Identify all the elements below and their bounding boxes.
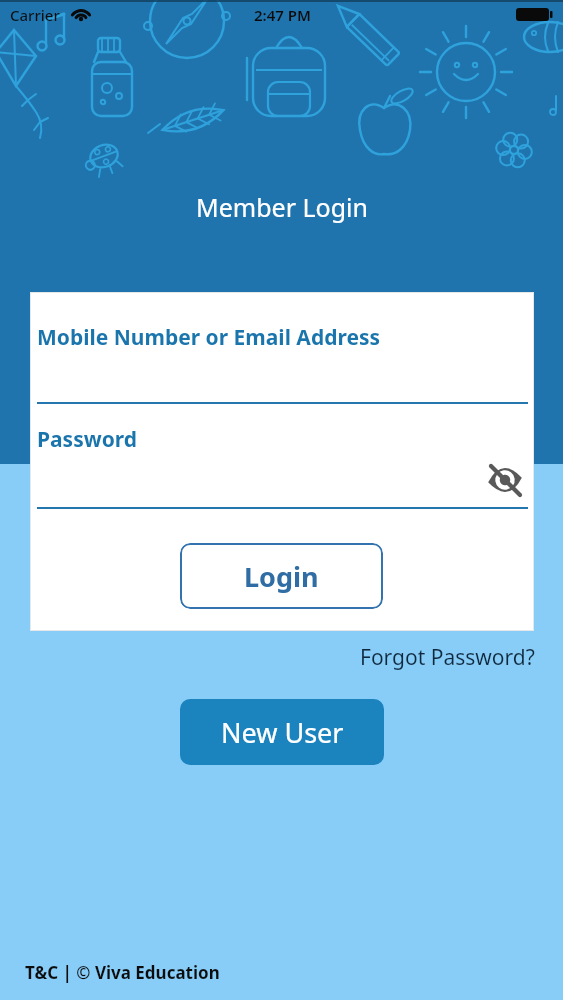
staticText: Password (37, 425, 138, 454)
staticText: Carrier (10, 5, 60, 25)
button[interactable]: Forgot Password? (300, 642, 535, 672)
button[interactable] (485, 460, 525, 500)
button[interactable]: New User (180, 699, 384, 765)
button[interactable]: Login (180, 543, 383, 609)
staticText: Login (244, 558, 319, 595)
staticText: Mobile Number or Email Address (37, 323, 381, 352)
staticText: Member Login (196, 190, 368, 224)
staticText: Forgot Password? (360, 643, 535, 672)
staticText: 2:47 PM (254, 5, 311, 25)
staticText: T&C | © Viva Education (25, 961, 220, 984)
staticText: New User (221, 714, 344, 751)
